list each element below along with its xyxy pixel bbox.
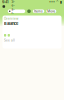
button[interactable]: Menu (27, 9, 31, 13)
button[interactable]: Items (33, 9, 44, 13)
button[interactable]: Search (8, 9, 25, 13)
staticText: Items (34, 9, 43, 13)
button[interactable]: Profile (2, 5, 5, 8)
staticText: ••• ⌃ ▮ (49, 0, 62, 4)
staticText: Balance (4, 21, 18, 26)
staticText: See all (4, 39, 15, 42)
staticText: 9:41 (2, 0, 9, 4)
staticText: Search (11, 0, 14, 23)
staticText: More (47, 9, 55, 13)
staticText: Overview (4, 17, 18, 20)
button[interactable]: More (46, 9, 56, 13)
